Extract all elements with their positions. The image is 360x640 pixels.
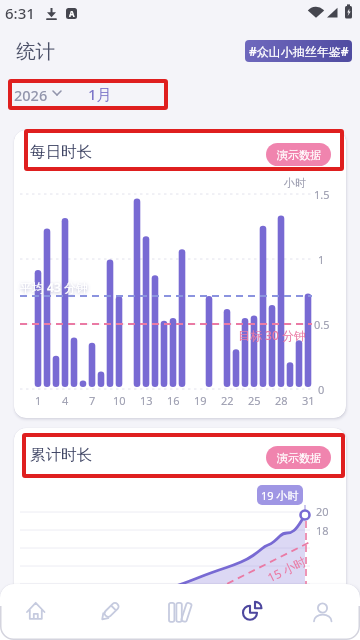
staticText: 平均 43 分钟 xyxy=(20,279,88,295)
button[interactable]: 演示数据 xyxy=(266,446,331,469)
staticText: 演示数据 xyxy=(277,451,321,465)
staticText: 6:31 xyxy=(5,3,35,23)
staticText: A xyxy=(69,8,75,19)
button[interactable] xyxy=(144,584,216,640)
staticText: 10 xyxy=(113,393,126,408)
staticText: 19 小时 xyxy=(261,488,299,503)
staticText: 7 xyxy=(89,393,96,408)
staticText: 目标 30 分钟 xyxy=(238,327,306,343)
button[interactable] xyxy=(288,584,360,640)
staticText: 22 xyxy=(221,393,234,408)
staticText: #众山小抽丝年鉴# xyxy=(249,43,349,59)
staticText: 18 xyxy=(316,523,329,538)
button[interactable] xyxy=(216,584,288,640)
staticText: 0.5 xyxy=(314,317,330,332)
staticText: 2026 xyxy=(14,85,48,105)
button[interactable]: #众山小抽丝年鉴# xyxy=(245,40,352,62)
staticText: 每日时长 xyxy=(30,142,92,162)
staticText: 13 xyxy=(140,393,153,408)
staticText: 20 xyxy=(316,504,329,519)
staticText: 统计 xyxy=(16,39,55,64)
staticText: 16 xyxy=(167,393,180,408)
button[interactable] xyxy=(72,584,144,640)
staticText: 演示数据 xyxy=(277,148,321,162)
staticText: 1月 xyxy=(88,84,112,104)
staticText: 4 xyxy=(62,393,69,408)
button[interactable]: 演示数据 xyxy=(266,143,331,166)
button[interactable] xyxy=(84,82,120,108)
staticText: 28 xyxy=(275,393,288,408)
staticText: 25 xyxy=(248,393,261,408)
button[interactable] xyxy=(0,584,72,640)
staticText: 19 xyxy=(194,393,207,408)
staticText: 1 xyxy=(35,393,42,408)
button[interactable] xyxy=(10,82,80,108)
staticText: 小时 xyxy=(284,176,306,190)
staticText: 0 xyxy=(318,382,325,397)
staticText: 1 xyxy=(318,252,325,267)
staticText: 15 小时 xyxy=(265,553,308,585)
staticText: 1.5 xyxy=(314,187,330,202)
staticText: 累计时长 xyxy=(30,445,92,465)
staticText: 31 xyxy=(302,393,315,408)
